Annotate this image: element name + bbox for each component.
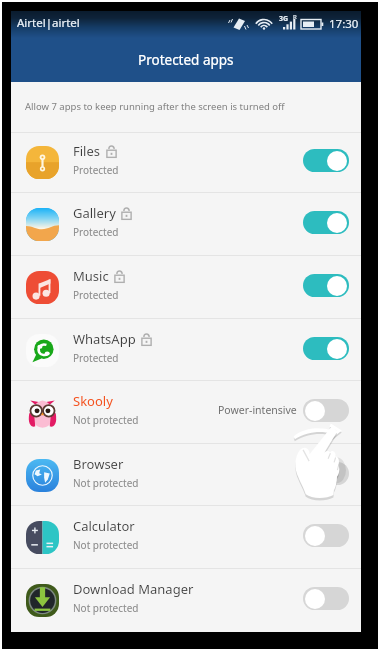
button[interactable]: Music [11,256,361,318]
staticText: Not protected [73,538,139,552]
staticText: Not protected [73,601,139,615]
button[interactable]: Protected on [303,149,349,172]
staticText: Protected [73,288,119,302]
staticText: Browser [73,455,124,473]
staticText: Not protected [73,413,139,427]
button[interactable]: Gallery [11,193,361,255]
staticText: 3G [279,14,289,24]
staticText: Calculator [73,517,135,535]
button[interactable]: Protected on [303,274,349,297]
staticText: Skooly [73,392,113,410]
button[interactable]: Calculator [11,506,361,568]
button[interactable]: Browser [11,444,361,506]
button[interactable]: Download Manager [11,569,361,631]
staticText: Allow 7 apps to keep running after the s… [25,100,285,113]
staticText: Gallery [73,204,116,222]
staticText: WhatsApp [73,330,136,348]
staticText: Not protected [73,476,139,490]
staticText: Protected apps [138,51,234,69]
button[interactable]: Protected on [303,337,349,360]
button[interactable]: Protected off [303,524,349,547]
staticText: R [293,13,297,21]
staticText: Files [73,142,101,160]
button[interactable]: WhatsApp [11,319,361,381]
button[interactable]: Files [11,133,361,192]
button[interactable]: Protected off [303,462,349,485]
staticText: Download Manager [73,580,194,598]
staticText: Music [73,267,109,285]
button[interactable]: Skooly [11,381,361,443]
button[interactable]: Protected off [303,399,349,422]
staticText: Protected [73,225,119,239]
staticText: Protected [73,163,119,177]
staticText: Power-intensive [218,403,297,417]
button[interactable]: Protected on [303,211,349,234]
button[interactable]: Protected off [303,587,349,610]
staticText: 17:30 [329,16,359,32]
staticText: Protected [73,351,119,365]
staticText: Airtel|airtel [17,15,80,31]
